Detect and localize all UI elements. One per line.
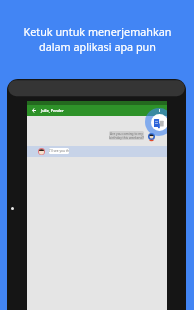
- staticText: I'll see you there: [49, 149, 69, 153]
- staticText: Julie, Pender: [41, 108, 64, 113]
- other: Back: [32, 108, 36, 113]
- button[interactable]: Back: [27, 105, 167, 116]
- staticText: Ketuk untuk menerjemahkan: [23, 24, 172, 39]
- button[interactable]: Are you coming to my birthday this weeke…: [109, 131, 144, 140]
- button[interactable]: I'll see you there: [27, 146, 167, 157]
- staticText: Are you coming to my birthday this weeke…: [109, 132, 144, 140]
- button[interactable]: Translate: [145, 108, 167, 136]
- staticText: dalam aplikasi apa pun: [39, 39, 156, 54]
